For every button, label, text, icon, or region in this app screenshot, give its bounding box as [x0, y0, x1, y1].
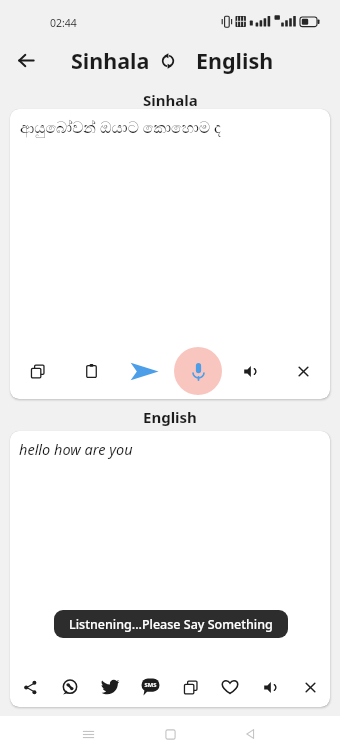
button[interactable]: Send SMS: [130, 667, 170, 707]
button[interactable]: Back: [237, 720, 265, 748]
button[interactable]: Copy: [170, 667, 210, 707]
button[interactable]: Paste: [64, 343, 118, 399]
button[interactable]: Share: [10, 667, 50, 707]
staticText: SMS: [141, 681, 160, 689]
staticText: 02:44: [50, 16, 77, 30]
button[interactable]: English: [196, 46, 274, 75]
button[interactable]: Favourite: [210, 667, 250, 707]
button[interactable]: Copy: [10, 343, 64, 399]
staticText: ආයුබෝවන් ඔයාට කොහොම ද: [20, 116, 221, 137]
staticText: Sinhala: [143, 90, 198, 110]
button[interactable]: Home: [156, 720, 184, 748]
button[interactable]: Translate: [118, 343, 171, 399]
button[interactable]: Recent apps: [74, 720, 102, 748]
button[interactable]: Clear: [277, 343, 330, 399]
button[interactable]: Share on WhatsApp: [50, 667, 90, 707]
staticText: Listnening...Please Say Something: [69, 616, 273, 633]
button[interactable]: Listen: [224, 343, 277, 399]
staticText: hello how are you: [19, 439, 133, 459]
button[interactable]: Listen: [250, 667, 290, 707]
button[interactable]: Sinhala: [71, 46, 150, 75]
button[interactable]: Share on Twitter: [90, 667, 130, 707]
button[interactable]: Back: [9, 43, 44, 78]
staticText: English: [143, 407, 197, 427]
button[interactable]: Swap languages: [153, 46, 182, 75]
button[interactable]: Speak to translate: [171, 343, 224, 399]
button[interactable]: Clear: [290, 667, 330, 707]
